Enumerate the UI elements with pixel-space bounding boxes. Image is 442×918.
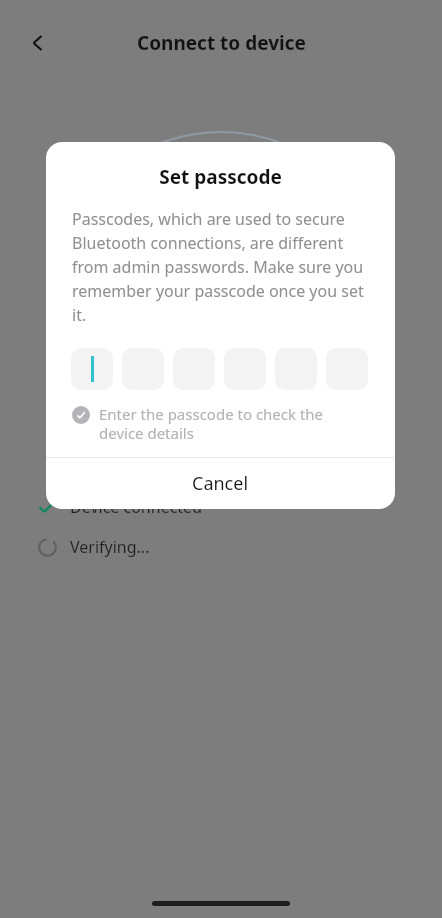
staticText: Verifying... xyxy=(70,536,150,558)
button[interactable]: Cancel xyxy=(46,458,395,509)
staticText: Connect to device xyxy=(137,30,306,56)
staticText: Cancel xyxy=(192,471,249,496)
staticText: Enter the passcode to check the device d… xyxy=(99,404,369,443)
staticText: Set passcode xyxy=(46,164,395,190)
button[interactable] xyxy=(71,348,113,390)
button[interactable]: Back xyxy=(16,21,60,65)
staticText: Device connected xyxy=(70,496,202,518)
staticText: Passcodes, which are used to secure Blue… xyxy=(72,208,369,326)
